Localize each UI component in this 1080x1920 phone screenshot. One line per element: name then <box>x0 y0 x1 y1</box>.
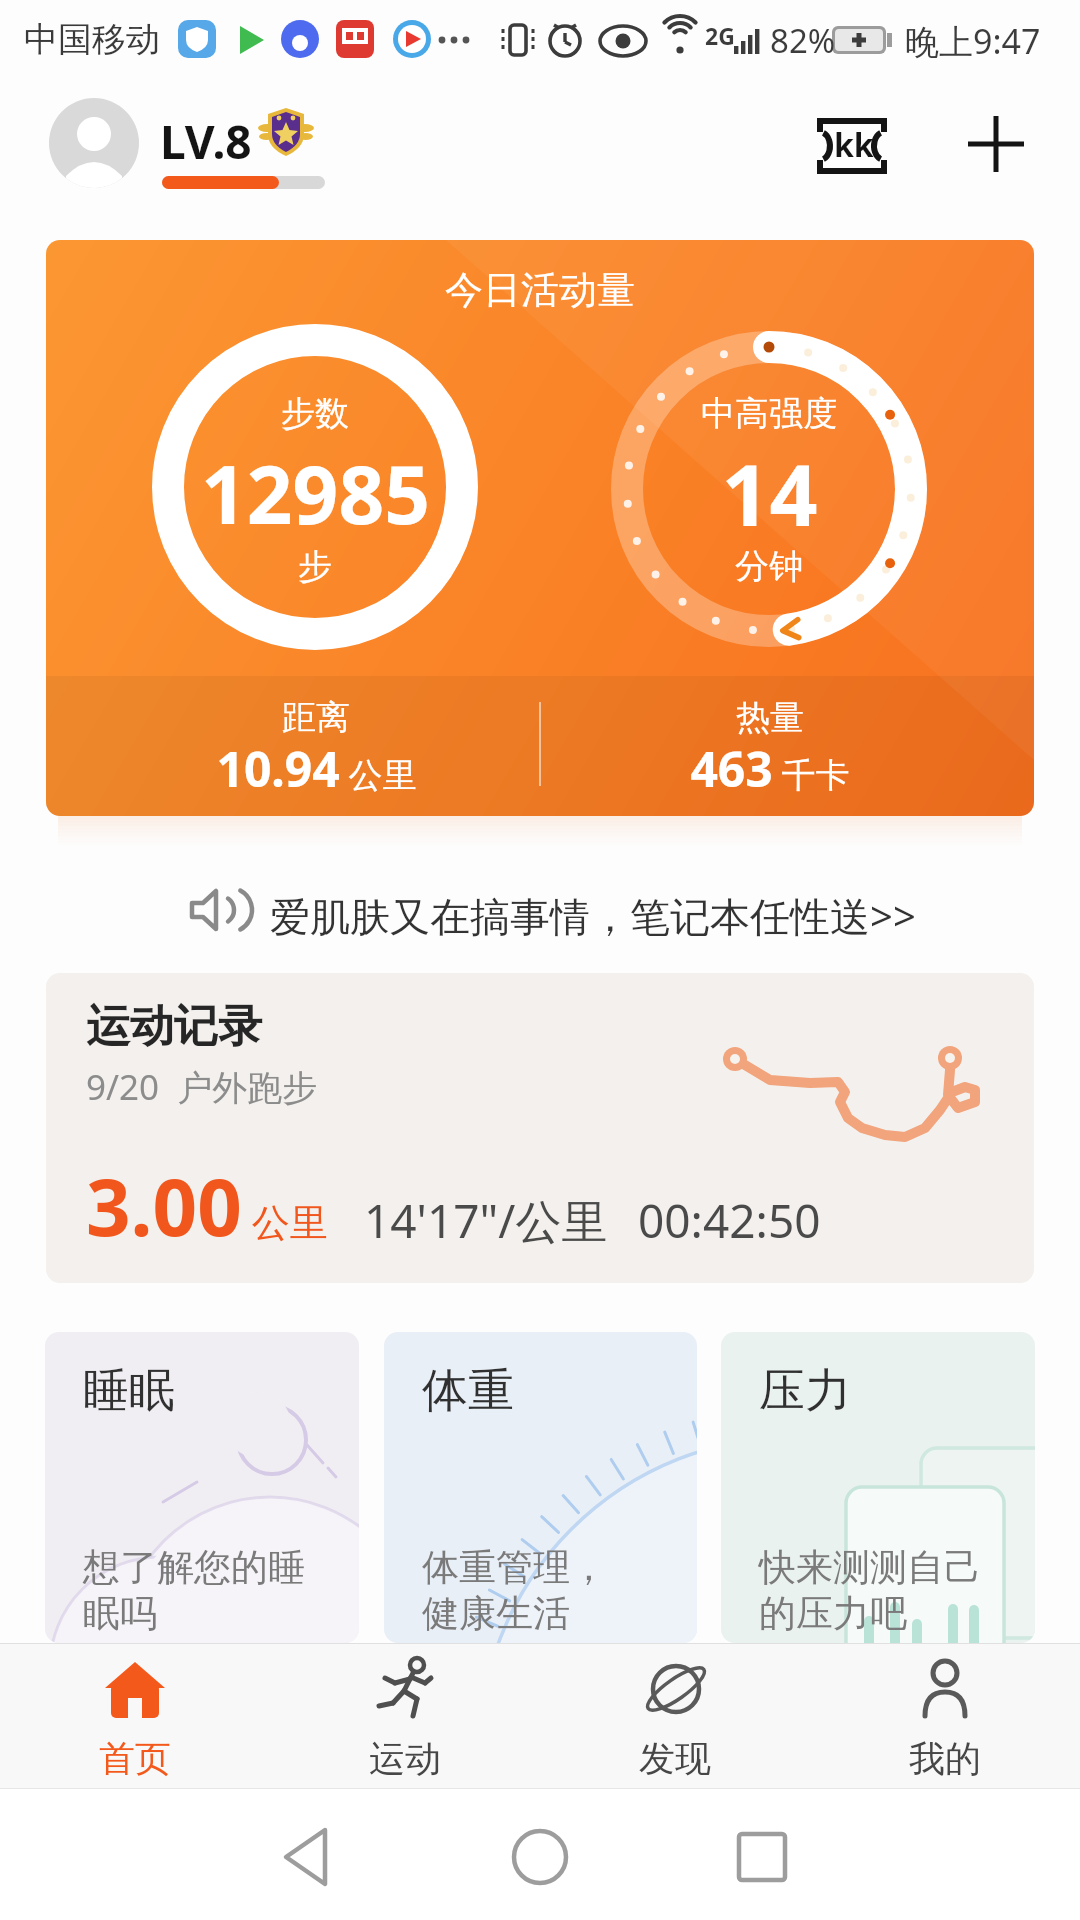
button[interactable]: 爱肌肤又在搞事情，笔记本任性送>> <box>180 872 910 948</box>
staticText: 82% <box>770 18 836 63</box>
staticText: 中国移动 <box>24 18 160 61</box>
staticText: 步数 <box>281 392 349 435</box>
staticText: 发现 <box>639 1736 711 1781</box>
staticText: 9/20 户外跑步 <box>86 1063 318 1111</box>
button[interactable]: 运动 <box>270 1644 540 1788</box>
staticText: 12985 <box>201 438 430 547</box>
staticText: 快来测测自己 <box>759 1544 981 1591</box>
staticText: 分钟 <box>735 545 803 588</box>
staticText: 运动 <box>369 1736 441 1781</box>
staticText: 首页 <box>99 1736 171 1781</box>
staticText: 压力 <box>759 1362 851 1420</box>
staticText: 想了解您的睡 <box>83 1544 305 1591</box>
staticText: 10.94 公里 <box>216 736 417 801</box>
button[interactable]: 首页 <box>0 1644 270 1788</box>
button[interactable]: kk <box>812 110 892 180</box>
staticText: 我的 <box>909 1736 981 1781</box>
staticText: 00:42:50 <box>638 1189 821 1252</box>
staticText: 步 <box>298 545 332 588</box>
staticText: 热量 <box>736 696 804 739</box>
button[interactable]: 体重 <box>384 1332 697 1643</box>
staticText: kk <box>834 123 874 167</box>
staticText: 晚上9:47 <box>905 18 1041 64</box>
button[interactable] <box>270 1812 360 1902</box>
button[interactable]: 发现 <box>540 1644 810 1788</box>
button[interactable] <box>960 108 1032 180</box>
staticText: 14'17"/公里 <box>364 1189 608 1252</box>
staticText: 2G <box>705 20 735 51</box>
button[interactable] <box>717 1812 807 1902</box>
staticText: 睡眠 <box>83 1362 175 1420</box>
staticText: 的压力吧 <box>759 1590 907 1637</box>
staticText: 爱肌肤又在搞事情，笔记本任性送>> <box>270 888 916 943</box>
staticText: 体重 <box>422 1362 514 1420</box>
staticText: 运动记录 <box>86 999 262 1054</box>
staticText: 眠吗 <box>83 1590 157 1637</box>
button[interactable]: 今日活动量 <box>46 240 1034 816</box>
staticText: 健康生活 <box>422 1590 570 1637</box>
staticText: 中高强度 <box>701 392 837 435</box>
staticText: 体重管理， <box>422 1544 607 1591</box>
staticText: 距离 <box>282 696 350 739</box>
button[interactable] <box>495 1812 585 1902</box>
button[interactable]: 睡眠 <box>45 1332 359 1643</box>
staticText: 14 <box>721 436 818 550</box>
staticText: LV.8 <box>160 110 252 173</box>
staticText: 463 千卡 <box>690 736 850 801</box>
button[interactable]: 压力 <box>721 1332 1035 1643</box>
staticText: 今日活动量 <box>445 266 635 314</box>
button[interactable] <box>49 98 139 188</box>
staticText: 3.00 公里 <box>86 1153 328 1259</box>
button[interactable]: 运动记录 <box>46 973 1034 1283</box>
button[interactable]: 我的 <box>810 1644 1080 1788</box>
